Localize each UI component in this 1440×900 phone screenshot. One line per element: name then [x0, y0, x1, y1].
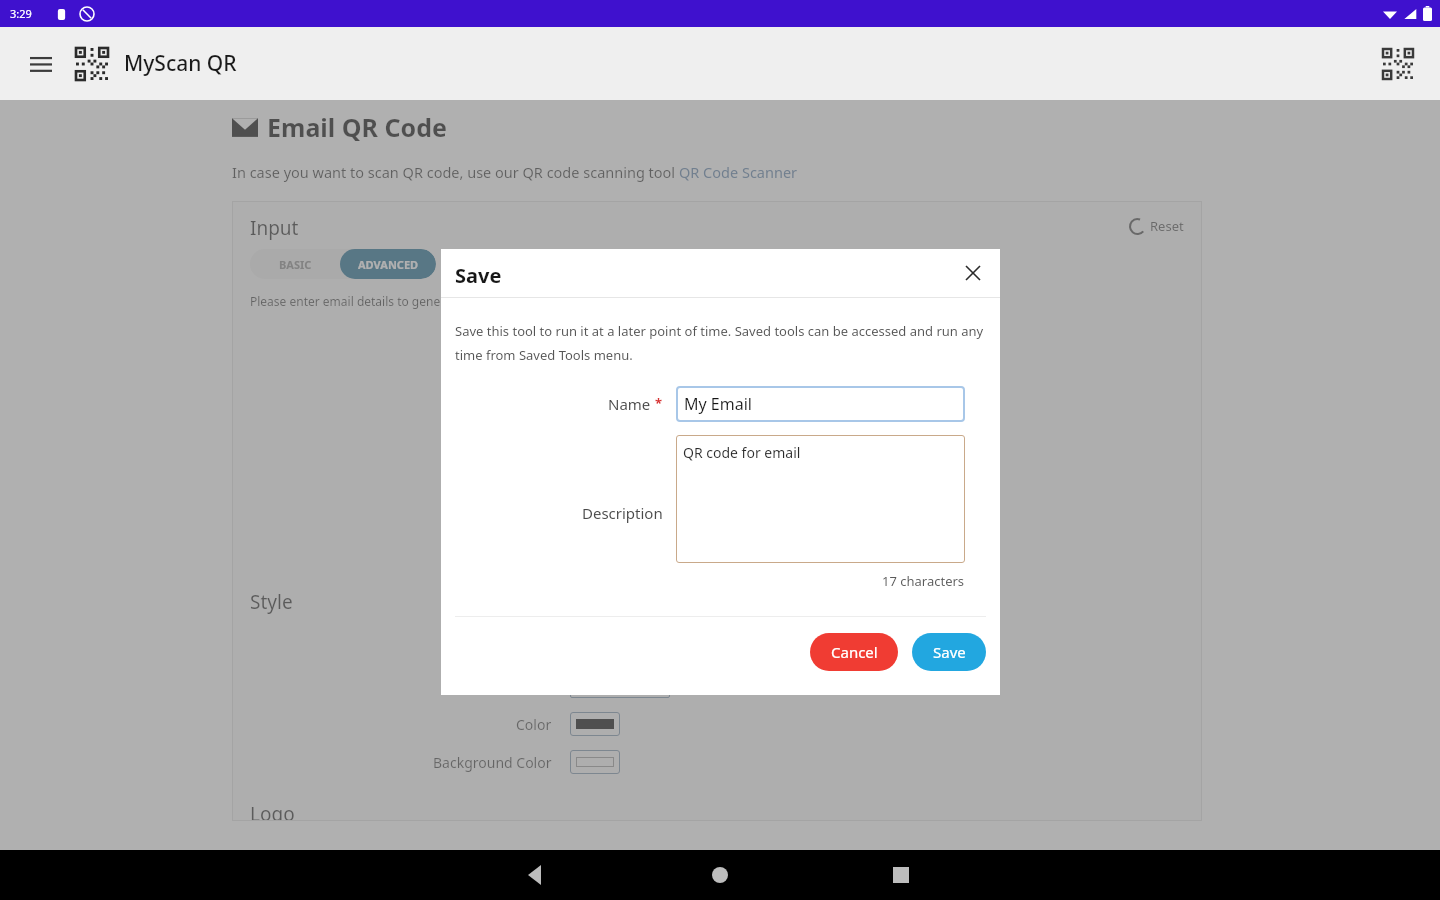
staticText: Description: [582, 503, 663, 523]
staticText: Save this tool to run it at a later poin…: [455, 322, 984, 340]
button[interactable]: QR code for email: [676, 435, 965, 563]
staticText: My Email: [684, 393, 752, 415]
staticText: Email Id: [499, 336, 552, 355]
staticText: In case you want to scan QR code, use ou…: [232, 162, 679, 182]
button[interactable]: QR Code Scanner: [679, 162, 798, 182]
staticText: ADVANCED: [358, 257, 419, 272]
staticText: MyScan QR: [124, 49, 237, 78]
staticText: Background Color: [433, 753, 552, 772]
staticText: Save: [455, 262, 502, 289]
button[interactable]: Save: [912, 633, 986, 671]
staticText: Cancel: [831, 642, 878, 662]
staticText: time from Saved Tools menu.: [455, 346, 633, 364]
staticText: QR code for email: [683, 443, 801, 462]
staticText: Reset: [1150, 217, 1184, 235]
staticText: 3:29: [10, 6, 32, 21]
button[interactable]: Scan QR code: [1378, 44, 1418, 84]
button[interactable]: My Email: [676, 386, 965, 422]
staticText: Name: [608, 394, 651, 414]
button[interactable]: Menu: [22, 45, 60, 83]
staticText: Color: [516, 715, 552, 734]
staticText: Save: [933, 642, 966, 662]
button[interactable]: BASIC: [250, 249, 340, 279]
staticText: *: [655, 394, 663, 412]
staticText: Input: [250, 215, 299, 241]
staticText: Style: [250, 589, 293, 615]
staticText: BASIC: [279, 257, 312, 272]
staticText: Please enter email details to generate Q…: [250, 293, 513, 309]
staticText: Logo: [250, 801, 295, 821]
button[interactable]: ADVANCED: [340, 249, 436, 279]
button[interactable]: Close: [958, 258, 988, 288]
button[interactable]: Cancel: [810, 633, 898, 671]
staticText: 17 characters: [882, 572, 965, 590]
staticText: Email QR Code: [267, 110, 447, 144]
button[interactable]: Reset: [1130, 217, 1184, 235]
